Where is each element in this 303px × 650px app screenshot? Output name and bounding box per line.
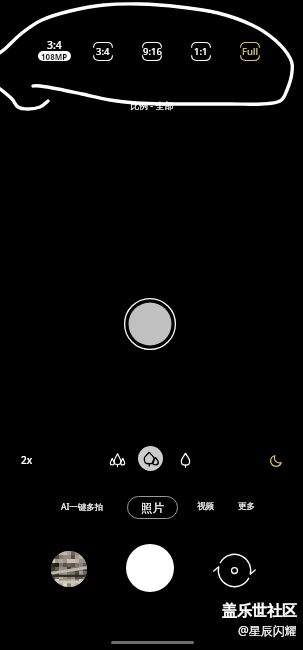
staticText: 3:4 <box>47 38 62 52</box>
staticText: Full <box>242 45 259 58</box>
button[interactable]: 更多 <box>238 501 255 512</box>
button[interactable]: Shutter <box>126 544 174 592</box>
staticText: 3:4 <box>96 45 110 58</box>
button[interactable]: Night mode <box>263 448 288 473</box>
button[interactable]: 1:1 <box>191 42 211 61</box>
button[interactable]: Ultra wide lens <box>104 446 131 473</box>
button[interactable]: 视频 <box>197 501 214 512</box>
button[interactable]: Telephoto lens <box>172 446 199 473</box>
button[interactable]: AI一键多拍 <box>61 501 104 513</box>
staticText: @星辰闪耀 <box>238 622 297 638</box>
staticText: 2x <box>21 453 33 467</box>
button[interactable]: 3:4 <box>33 38 75 62</box>
button[interactable]: 3:4 <box>93 42 113 61</box>
button[interactable]: 9:16 <box>142 42 162 61</box>
staticText: 9:16 <box>143 45 162 58</box>
button[interactable]: Switch camera <box>214 550 254 590</box>
staticText: 108MP <box>41 51 68 61</box>
staticText: 盖乐世社区 <box>222 602 297 621</box>
button[interactable]: 2x <box>13 448 41 471</box>
staticText: 比例 - 全部 <box>130 99 174 111</box>
button[interactable]: Full <box>240 42 260 61</box>
staticText: 1:1 <box>194 45 208 58</box>
button[interactable]: Main lens <box>138 446 163 471</box>
staticText: 照片 <box>141 501 164 515</box>
button[interactable]: 照片 <box>127 496 178 519</box>
button[interactable]: Gallery <box>51 551 87 587</box>
